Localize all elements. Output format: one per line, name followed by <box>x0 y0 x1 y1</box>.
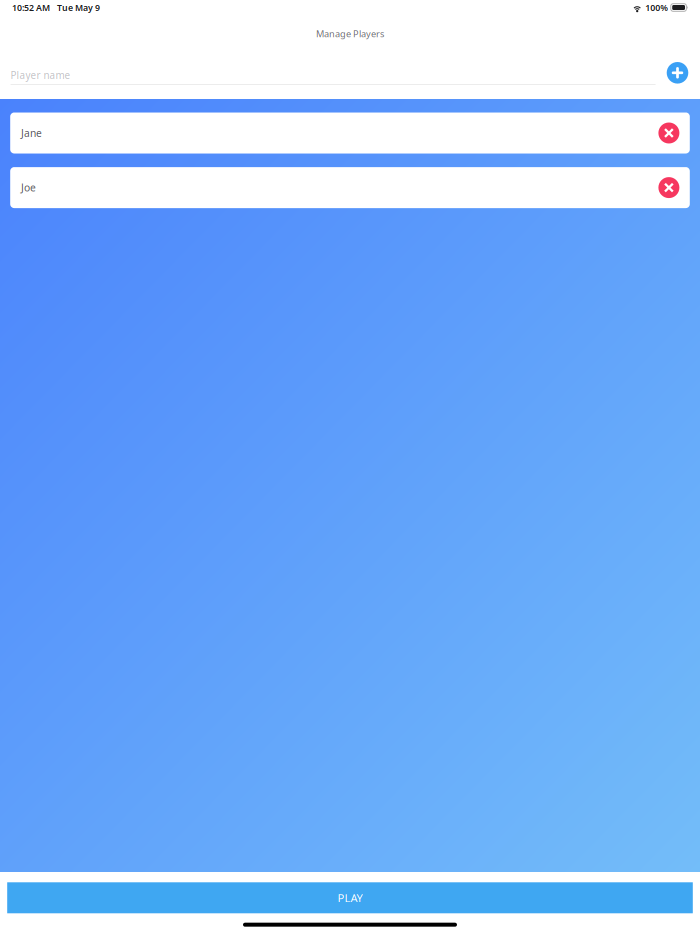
staticText: Jane <box>21 126 42 140</box>
button[interactable]: Remove Jane <box>658 122 679 143</box>
staticText: Manage Players <box>316 27 384 40</box>
button[interactable]: PLAY <box>7 882 693 913</box>
staticText: Joe <box>21 181 36 195</box>
button[interactable]: Remove Joe <box>658 177 679 198</box>
staticText: 100% <box>645 1 668 13</box>
staticText: Tue May 9 <box>57 1 100 13</box>
staticText: Player name <box>11 68 71 82</box>
button[interactable]: Add player <box>667 62 688 84</box>
staticText: PLAY <box>337 890 362 905</box>
staticText: 10:52 AM <box>12 1 50 13</box>
